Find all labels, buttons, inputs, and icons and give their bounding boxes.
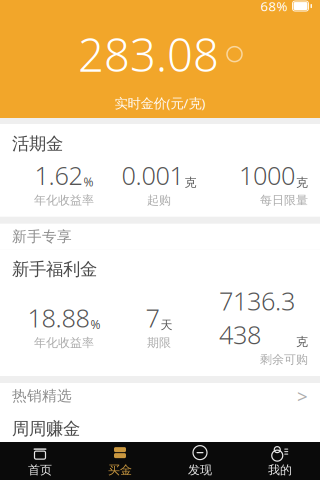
- staticText: 新手福利金: [12, 259, 97, 280]
- staticText: 期限: [147, 335, 171, 350]
- button[interactable]: 我的: [240, 442, 320, 480]
- staticText: 我的: [268, 463, 292, 477]
- button[interactable]: 发现: [160, 442, 240, 480]
- button[interactable]: 首页: [0, 442, 80, 480]
- staticText: 0.001: [121, 158, 183, 192]
- staticText: 活期金: [12, 133, 63, 154]
- button[interactable]: 活期金: [0, 124, 320, 217]
- staticText: 实时金价(元/克): [114, 94, 205, 112]
- staticText: 起购: [147, 193, 171, 208]
- staticText: 发现: [188, 463, 212, 477]
- staticText: 周周赚金: [12, 418, 80, 439]
- staticText: 18.88: [27, 301, 89, 334]
- button[interactable]: 周周赚金: [0, 409, 320, 480]
- staticText: %: [83, 174, 93, 190]
- button[interactable]: 热销精选: [0, 383, 320, 409]
- staticText: 年化收益率: [34, 193, 94, 208]
- staticText: 买金: [108, 463, 132, 477]
- staticText: 年化收益率: [34, 335, 94, 350]
- button[interactable]: 买金: [80, 442, 160, 480]
- staticText: 克: [296, 175, 308, 190]
- staticText: 1000: [239, 158, 295, 192]
- staticText: 283.08: [78, 24, 219, 84]
- staticText: 新手专享: [12, 228, 72, 246]
- staticText: 热销精选: [12, 387, 72, 405]
- staticText: 7073.9473: [219, 443, 295, 480]
- staticText: 天: [160, 318, 172, 332]
- staticText: %: [90, 316, 100, 332]
- staticText: 68%: [260, 0, 287, 15]
- button[interactable]: 新手专享: [0, 224, 320, 250]
- staticText: 首页: [28, 463, 52, 477]
- staticText: 1.62: [34, 158, 82, 192]
- staticText: 2.3: [41, 460, 75, 480]
- staticText: 7: [145, 301, 159, 334]
- staticText: 克: [296, 334, 308, 349]
- staticText: 克: [184, 175, 196, 190]
- staticText: 剩余可购: [260, 352, 308, 367]
- staticText: 7136.3438: [219, 284, 295, 351]
- button[interactable]: 新手福利金: [0, 250, 320, 376]
- staticText: >: [297, 384, 308, 408]
- staticText: 每日限量: [260, 193, 308, 208]
